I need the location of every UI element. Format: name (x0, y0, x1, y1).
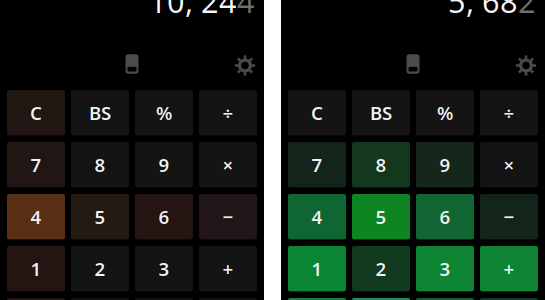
button[interactable]: 6 (416, 194, 474, 239)
button[interactable]: 1 (288, 246, 346, 291)
button[interactable]: C (7, 90, 65, 135)
staticText: − (222, 204, 233, 229)
staticText: 10, 24 (149, 0, 237, 21)
staticText: 8 (94, 152, 105, 177)
button[interactable]: 2 (71, 246, 129, 291)
staticText: 5 (375, 204, 386, 229)
button[interactable]: 7 (7, 142, 65, 187)
button[interactable]: 1 (7, 246, 65, 291)
staticText: BS (89, 100, 111, 125)
button[interactable]: − (480, 194, 538, 239)
button[interactable]: 2 (352, 246, 410, 291)
button[interactable]: 9 (135, 142, 193, 187)
button[interactable]: 6 (135, 194, 193, 239)
staticText: 9 (439, 152, 450, 177)
staticText: 4 (237, 0, 255, 21)
button[interactable]: 3 (416, 246, 474, 291)
staticText: + (503, 256, 514, 281)
button[interactable]: + (199, 246, 257, 291)
staticText: − (503, 204, 514, 229)
staticText: 2 (518, 0, 536, 21)
staticText: 2 (375, 256, 386, 281)
button[interactable]: − (199, 194, 257, 239)
button[interactable]: Keypad layout (120, 52, 144, 76)
staticText: 3 (439, 256, 450, 281)
button[interactable]: Settings (514, 53, 538, 77)
button[interactable]: 00 (288, 298, 346, 300)
staticText: 4 (30, 204, 41, 229)
button[interactable]: BS (71, 90, 129, 135)
staticText: 5, 68 (448, 0, 518, 21)
staticText: ÷ (503, 100, 514, 125)
staticText: 9 (158, 152, 169, 177)
staticText: 5 (94, 204, 105, 229)
button[interactable]: % (135, 90, 193, 135)
button[interactable]: × (199, 142, 257, 187)
staticText: × (222, 152, 233, 177)
staticText: 3 (158, 256, 169, 281)
button[interactable]: 00 (7, 298, 65, 300)
button[interactable]: ÷ (199, 90, 257, 135)
button[interactable]: 8 (71, 142, 129, 187)
staticText: 1 (311, 256, 322, 281)
staticText: 7 (30, 152, 41, 177)
staticText: 4 (311, 204, 322, 229)
staticText: 6 (158, 204, 169, 229)
staticText: + (222, 256, 233, 281)
button[interactable]: . (416, 298, 474, 300)
button[interactable]: % (416, 90, 474, 135)
button[interactable]: = (480, 298, 538, 300)
button[interactable]: BS (352, 90, 410, 135)
staticText: C (30, 100, 42, 125)
button[interactable]: × (480, 142, 538, 187)
button[interactable]: 0 (352, 298, 410, 300)
staticText: % (156, 100, 172, 125)
button[interactable]: C (288, 90, 346, 135)
button[interactable]: 8 (352, 142, 410, 187)
staticText: C (311, 100, 323, 125)
staticText: 7 (311, 152, 322, 177)
button[interactable]: 5 (71, 194, 129, 239)
button[interactable]: + (480, 246, 538, 291)
staticText: ÷ (222, 100, 233, 125)
staticText: BS (370, 100, 392, 125)
staticText: 1 (30, 256, 41, 281)
button[interactable]: Settings (233, 53, 257, 77)
button[interactable]: 9 (416, 142, 474, 187)
button[interactable]: Keypad layout (401, 52, 425, 76)
button[interactable]: 3 (135, 246, 193, 291)
button[interactable]: 7 (288, 142, 346, 187)
staticText: 2 (94, 256, 105, 281)
button[interactable]: 4 (288, 194, 346, 239)
staticText: % (437, 100, 453, 125)
staticText: 6 (439, 204, 450, 229)
button[interactable]: 5 (352, 194, 410, 239)
staticText: × (503, 152, 514, 177)
button[interactable]: 4 (7, 194, 65, 239)
button[interactable]: ÷ (480, 90, 538, 135)
staticText: 8 (375, 152, 386, 177)
